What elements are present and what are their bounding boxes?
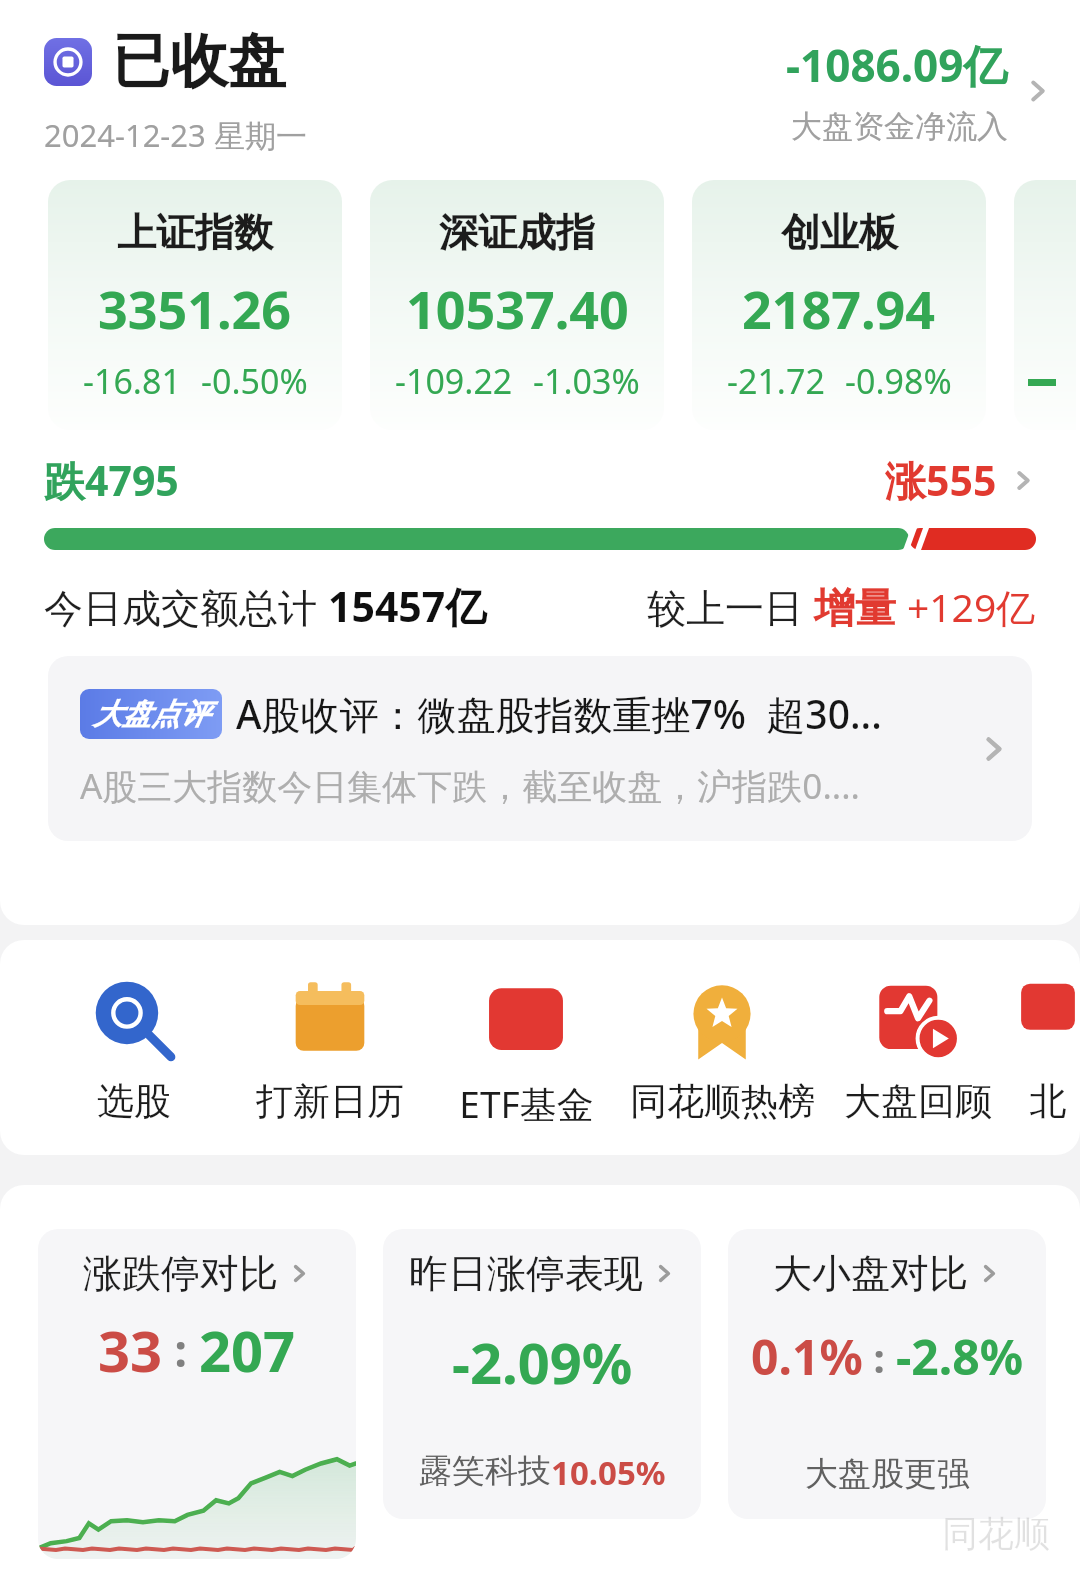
staticText: 2024-12-23 星期一 (44, 114, 307, 156)
button[interactable]: ETF基金 (428, 976, 624, 1129)
button[interactable]: 选股 (36, 976, 232, 1125)
staticText: : (163, 1320, 199, 1380)
staticText: 3351.26 (98, 273, 292, 344)
staticText: 今日成交额总计 (44, 580, 328, 633)
button[interactable]: 昨日涨停表现 (383, 1229, 701, 1519)
staticText: 大盘资金净流入 (791, 107, 1008, 146)
button[interactable]: 同花顺热榜 (624, 976, 820, 1125)
staticText: A股收评：微盘股指数重挫7% 超30... (236, 687, 882, 740)
staticText: 增量 (814, 578, 907, 634)
staticText: ETF基金 (459, 1078, 594, 1129)
button[interactable]: 跌4795 (44, 452, 1036, 508)
staticText: -0.98% (845, 358, 952, 404)
staticText: 涨跌停对比 (83, 1249, 278, 1298)
staticText: 跌4795 (44, 452, 179, 508)
staticText: : (863, 1330, 896, 1384)
staticText: -2.8% (896, 1324, 1024, 1389)
staticText: 北交 (1016, 1078, 1080, 1125)
staticText: 同花顺 (942, 1511, 1050, 1556)
staticText: 上证指数 (117, 208, 273, 257)
button[interactable]: 深证成指 (370, 180, 664, 430)
button[interactable]: 大盘回顾 (820, 976, 1016, 1125)
staticText: -109.22 (395, 358, 513, 404)
staticText: 大小盘对比 (773, 1249, 968, 1298)
staticText: 2187.94 (742, 273, 936, 344)
staticText: -16.81 (83, 358, 181, 404)
staticText: 露笑科技 (419, 1450, 551, 1492)
staticText: 已收盘 (112, 25, 286, 98)
staticText: -2.09% (452, 1324, 633, 1400)
staticText: 创业板 (781, 208, 898, 257)
staticText: +129亿 (907, 580, 1036, 633)
staticText: -1086.09亿 (786, 35, 1008, 95)
staticText: 大盘回顾 (844, 1078, 992, 1125)
staticText: 15457亿 (328, 578, 487, 634)
button[interactable]: 上证指数 (48, 180, 342, 430)
button[interactable]: 北交 (1016, 976, 1080, 1125)
staticText: 涨555 (885, 452, 997, 508)
button[interactable]: 打新日历 (232, 976, 428, 1125)
staticText: -0.50% (201, 358, 308, 404)
staticText: 207 (199, 1312, 296, 1388)
staticText: 大盘股更强 (805, 1453, 970, 1495)
other: Market status (44, 38, 92, 86)
staticText: 昨日涨停表现 (409, 1249, 643, 1298)
staticText: A股三大指数今日集体下跌，截至收盘，沪指跌0.... (80, 762, 860, 810)
staticText: 选股 (97, 1078, 171, 1125)
button[interactable]: 大盘点评 (48, 656, 1032, 841)
button[interactable]: 大小盘对比 (728, 1229, 1046, 1519)
staticText: -21.72 (727, 358, 825, 404)
staticText: -1.03% (533, 358, 640, 404)
button[interactable]: 涨跌停对比 (38, 1229, 356, 1559)
staticText: 33 (98, 1312, 163, 1388)
button[interactable]: 创业板 (692, 180, 986, 430)
staticText: 10537.40 (406, 273, 629, 344)
staticText: 10.05% (551, 1450, 666, 1495)
staticText: 大盘点评 (93, 696, 209, 733)
staticText: 深证成指 (439, 208, 595, 257)
staticText: 打新日历 (256, 1078, 404, 1125)
staticText: 较上一日 (647, 580, 814, 633)
staticText: 0.1% (751, 1324, 863, 1389)
staticText: 同花顺热榜 (630, 1078, 815, 1125)
button[interactable] (1014, 180, 1076, 430)
button[interactable]: -1086.09亿 (786, 35, 1052, 146)
